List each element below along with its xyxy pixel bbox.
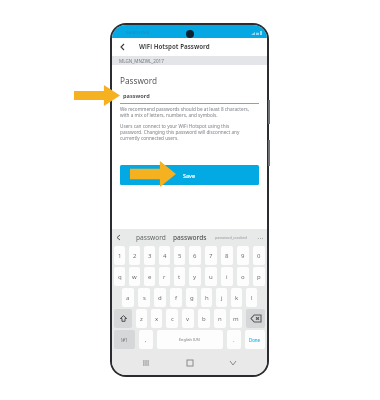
- button[interactable]: n: [214, 309, 226, 328]
- button[interactable]: y: [189, 267, 201, 286]
- staticText: Password: [120, 75, 158, 86]
- button[interactable]: Shift: [114, 309, 132, 328]
- button[interactable]: r: [159, 267, 170, 286]
- staticText: f: [175, 294, 178, 302]
- staticText: password: [136, 233, 166, 242]
- button[interactable]: .: [227, 330, 241, 349]
- staticText: m: [233, 315, 239, 323]
- staticText: a: [126, 294, 130, 302]
- staticText: t: [178, 273, 181, 281]
- staticText: 5: [178, 252, 182, 260]
- staticText: l: [251, 294, 253, 302]
- button[interactable]: w: [129, 267, 140, 286]
- staticText: w: [132, 273, 137, 281]
- button[interactable]: 9: [237, 246, 249, 265]
- button[interactable]: l: [246, 288, 257, 307]
- button[interactable]: Save: [120, 165, 259, 185]
- button[interactable]: e: [144, 267, 155, 286]
- staticText: !#1: [121, 337, 128, 343]
- button[interactable]: Done: [245, 330, 265, 349]
- button[interactable]: u: [205, 267, 217, 286]
- button[interactable]: password: [132, 229, 170, 245]
- button[interactable]: ,: [139, 330, 153, 349]
- button[interactable]: h: [201, 288, 212, 307]
- staticText: b: [202, 315, 206, 323]
- button[interactable]: s: [138, 288, 150, 307]
- button[interactable]: 5: [174, 246, 185, 265]
- staticText: i: [226, 273, 228, 281]
- button[interactable]: f: [170, 288, 182, 307]
- staticText: x: [155, 315, 159, 323]
- staticText: We recommend passwords should be at leas…: [120, 106, 250, 118]
- button[interactable]: m: [230, 309, 242, 328]
- button[interactable]: i: [221, 267, 233, 286]
- staticText: Done: [249, 337, 261, 343]
- staticText: WiFi Hotspot Password: [139, 42, 210, 50]
- button[interactable]: p: [253, 267, 265, 286]
- button[interactable]: More options: [253, 229, 267, 245]
- staticText: 3: [148, 252, 152, 260]
- staticText: r: [163, 273, 166, 281]
- staticText: 7: [209, 252, 213, 260]
- staticText: ⋯: [257, 234, 263, 241]
- staticText: English (US): [179, 337, 201, 342]
- staticText: j: [221, 294, 223, 302]
- staticText: u: [209, 273, 213, 281]
- button[interactable]: 8: [221, 246, 233, 265]
- staticText: s: [143, 294, 146, 302]
- staticText: 4: [163, 252, 167, 260]
- staticText: Save: [183, 172, 196, 179]
- button[interactable]: Back: [223, 353, 243, 373]
- button[interactable]: 6: [189, 246, 201, 265]
- button[interactable]: passwords: [170, 229, 209, 245]
- button[interactable]: Symbols: [114, 330, 135, 349]
- button[interactable]: 1: [114, 246, 125, 265]
- button[interactable]: password_cracked: [209, 229, 253, 245]
- staticText: y: [193, 273, 197, 281]
- button[interactable]: 0: [253, 246, 265, 265]
- button[interactable]: v: [182, 309, 194, 328]
- button[interactable]: Back: [112, 38, 133, 56]
- button[interactable]: z: [136, 309, 147, 328]
- button[interactable]: b: [198, 309, 210, 328]
- staticText: 8: [225, 252, 229, 260]
- button[interactable]: Home: [180, 353, 200, 373]
- button[interactable]: Backspace: [246, 309, 265, 328]
- button[interactable]: 2: [129, 246, 140, 265]
- staticText: SAMSUNG: [126, 30, 150, 35]
- staticText: 9: [241, 252, 245, 260]
- button[interactable]: Recents: [136, 353, 156, 373]
- staticText: z: [140, 315, 143, 323]
- button[interactable]: a: [122, 288, 134, 307]
- staticText: 6: [193, 252, 197, 260]
- staticText: 1: [118, 252, 122, 260]
- staticText: g: [190, 294, 194, 302]
- button[interactable]: 4: [159, 246, 170, 265]
- staticText: MLGN_MNZWL_2017: [119, 58, 164, 64]
- button[interactable]: Previous suggestions: [112, 229, 125, 245]
- staticText: e: [148, 273, 152, 281]
- button[interactable]: English (US): [157, 330, 223, 349]
- staticText: password: [123, 92, 150, 100]
- button[interactable]: k: [231, 288, 242, 307]
- button[interactable]: g: [186, 288, 197, 307]
- staticText: o: [241, 273, 245, 281]
- staticText: Users can connect to your WiFi Hotspot u…: [120, 123, 240, 141]
- staticText: h: [205, 294, 209, 302]
- staticText: passwords: [173, 233, 207, 242]
- staticText: c: [171, 315, 174, 323]
- button[interactable]: 7: [205, 246, 217, 265]
- staticText: k: [235, 294, 239, 302]
- button[interactable]: t: [174, 267, 185, 286]
- staticText: v: [186, 315, 190, 323]
- button[interactable]: 3: [144, 246, 155, 265]
- button[interactable]: j: [216, 288, 227, 307]
- button[interactable]: c: [166, 309, 178, 328]
- staticText: p: [257, 273, 261, 281]
- button[interactable]: d: [154, 288, 166, 307]
- staticText: password_cracked: [215, 235, 247, 240]
- staticText: q: [118, 273, 122, 281]
- button[interactable]: o: [237, 267, 249, 286]
- button[interactable]: q: [114, 267, 125, 286]
- button[interactable]: x: [151, 309, 162, 328]
